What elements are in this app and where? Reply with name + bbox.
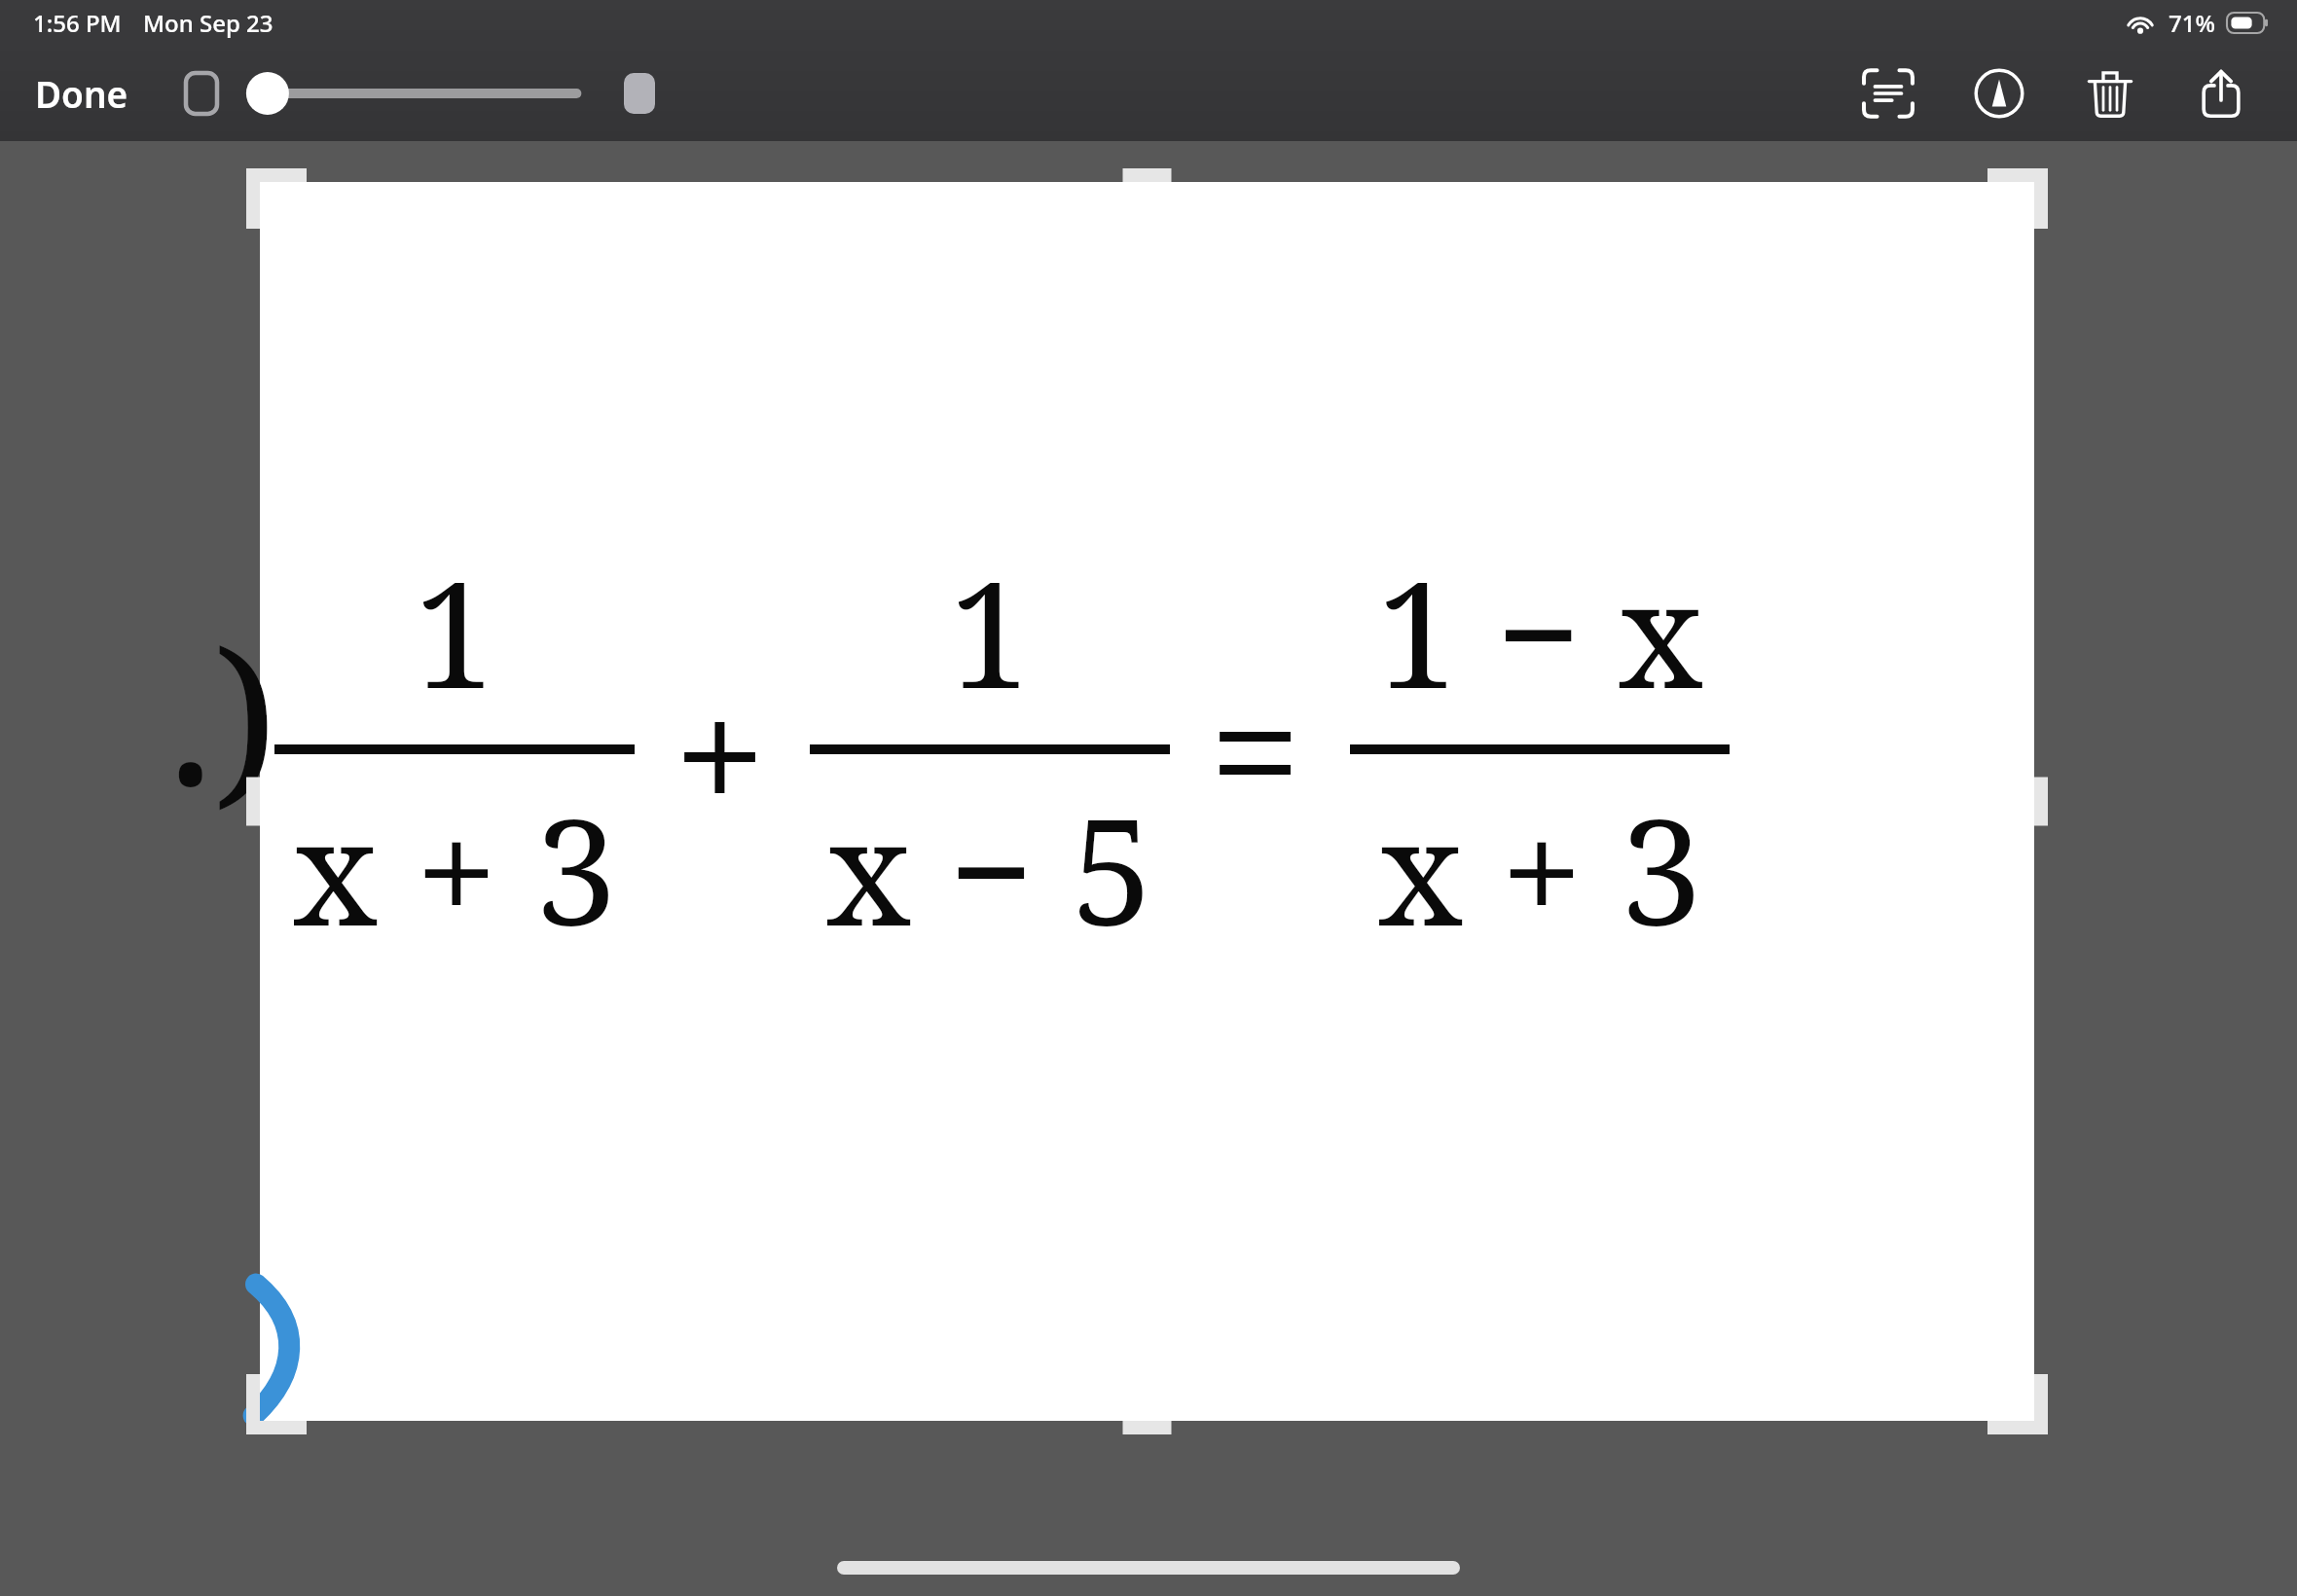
button[interactable]: Share — [2182, 54, 2260, 132]
button[interactable]: Zoom slider — [247, 59, 588, 127]
staticText: Mon Sep 23 — [143, 7, 273, 39]
button[interactable]: Markup — [1960, 54, 2038, 132]
staticText: x + 3 — [1378, 770, 1702, 968]
button[interactable]: Done — [27, 57, 136, 129]
staticText: 1 — [949, 532, 1031, 731]
staticText: 1 − x — [1376, 532, 1703, 731]
staticText: x − 5 — [826, 770, 1153, 968]
staticText: Done — [35, 69, 128, 118]
staticText: x + 3 — [293, 770, 617, 968]
button[interactable]: Page outline — [175, 62, 228, 125]
staticText: + — [674, 639, 767, 865]
button[interactable]: Delete — [2071, 54, 2149, 132]
staticText: 1:56 PM — [33, 7, 122, 39]
button[interactable]: Page filled — [613, 62, 666, 125]
staticText: 1 — [414, 532, 495, 731]
staticText: = — [1209, 635, 1302, 861]
staticText: 71% — [2169, 7, 2215, 39]
staticText: .) — [167, 589, 278, 841]
button[interactable]: Live Text — [1849, 54, 1927, 132]
